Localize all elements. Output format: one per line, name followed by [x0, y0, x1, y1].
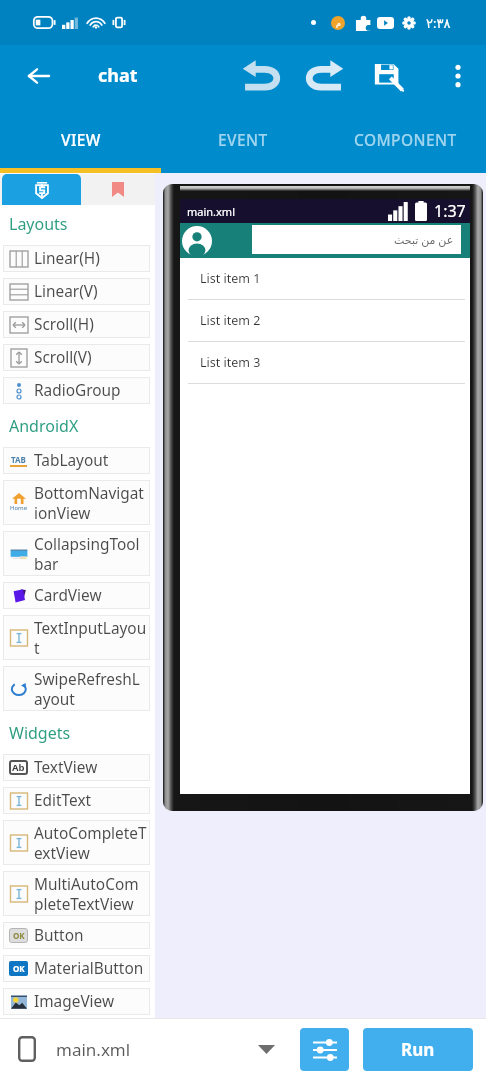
button[interactable]: CardView: [3, 582, 150, 609]
button[interactable]: EditText: [3, 787, 150, 814]
button[interactable]: More options: [438, 56, 478, 96]
button[interactable]: Linear(V): [3, 278, 150, 305]
staticText: Ab: [12, 761, 25, 774]
staticText: Linear(V): [34, 281, 98, 302]
button[interactable]: COMPONENT: [324, 106, 486, 173]
staticText: TextInputLayout: [34, 618, 147, 658]
staticText: MaterialButton: [34, 958, 144, 979]
button[interactable]: Linear(H): [3, 245, 150, 272]
staticText: main.xml: [56, 1038, 131, 1061]
staticText: Home: [10, 504, 28, 512]
button[interactable]: TAB: [3, 447, 150, 474]
button[interactable]: AutoCompleteTextView: [3, 820, 150, 865]
staticText: main.xml: [187, 204, 235, 219]
staticText: م: [336, 19, 341, 28]
staticText: VIEW: [61, 129, 101, 150]
staticText: TAB: [11, 454, 26, 465]
button[interactable]: Home: [3, 480, 150, 525]
staticText: RadioGroup: [34, 380, 121, 401]
staticText: عن من تبحث: [394, 232, 454, 247]
staticText: OK: [13, 963, 25, 974]
staticText: TabLayout: [34, 450, 109, 471]
button[interactable]: Redo: [301, 52, 349, 100]
staticText: List item 1: [200, 270, 261, 287]
button[interactable]: OK: [3, 955, 150, 982]
staticText: EVENT: [218, 129, 268, 150]
staticText: CardView: [34, 585, 102, 606]
staticText: Button: [34, 925, 84, 946]
staticText: Run: [401, 1038, 435, 1061]
button[interactable]: VIEW: [0, 106, 162, 173]
staticText: AutoCompleteTextView: [34, 823, 147, 863]
staticText: chat: [98, 63, 138, 88]
button[interactable]: Back: [15, 52, 63, 100]
staticText: SwipeRefreshLayout: [34, 669, 147, 709]
staticText: List item 3: [200, 354, 261, 371]
button[interactable]: Project settings: [300, 1028, 349, 1071]
staticText: Scroll(V): [34, 347, 92, 368]
staticText: ImageView: [34, 991, 115, 1012]
button[interactable]: Scroll(V): [3, 344, 150, 371]
button[interactable]: main.xml: [18, 1036, 131, 1062]
staticText: Layouts: [9, 213, 68, 235]
staticText: BottomNavigationView: [34, 483, 147, 523]
button[interactable]: EVENT: [162, 106, 324, 173]
button[interactable]: OK: [3, 922, 150, 949]
staticText: Scroll(H): [34, 314, 94, 335]
staticText: Linear(H): [34, 248, 100, 269]
button[interactable]: MultiAutoCompleteTextView: [3, 871, 150, 916]
button[interactable]: Ab: [3, 754, 150, 781]
button[interactable]: Widgets palette: [2, 174, 81, 205]
staticText: AndroidX: [9, 415, 79, 437]
button[interactable]: Run: [363, 1028, 473, 1071]
button[interactable]: SwipeRefreshLayout: [3, 666, 150, 711]
button[interactable]: CollapsingToolbar: [3, 531, 150, 576]
staticText: ٢:٣٨: [426, 14, 451, 32]
staticText: COMPONENT: [354, 129, 457, 150]
button[interactable]: Select file: [258, 1045, 275, 1054]
button[interactable]: Undo: [237, 52, 285, 100]
button[interactable]: ImageView: [3, 988, 150, 1015]
staticText: List item 2: [200, 312, 261, 329]
button[interactable]: Save: [364, 52, 412, 100]
staticText: TextView: [34, 757, 98, 778]
staticText: 1:37: [434, 200, 466, 222]
staticText: EditText: [34, 790, 92, 811]
staticText: MultiAutoCompleteTextView: [34, 874, 147, 914]
button[interactable]: RadioGroup: [3, 377, 150, 404]
button[interactable]: Favorites: [81, 174, 155, 205]
button[interactable]: TextInputLayout: [3, 615, 150, 660]
button[interactable]: Scroll(H): [3, 311, 150, 338]
staticText: Widgets: [9, 722, 71, 744]
staticText: OK: [13, 930, 25, 941]
staticText: CollapsingToolbar: [34, 534, 147, 574]
